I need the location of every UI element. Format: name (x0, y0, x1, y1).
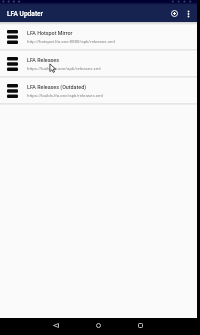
button[interactable]: Add repository (167, 5, 182, 22)
staticText: https://builds.lfa.one/apk/releases.xml (27, 93, 103, 98)
button[interactable]: LFA Releases (0, 51, 197, 76)
button[interactable]: Recent apps (130, 318, 150, 333)
button[interactable]: Home (88, 318, 108, 333)
button[interactable]: LFA Releases (Outdated) (0, 78, 197, 103)
button[interactable]: LFA Hotspot Mirror (0, 24, 197, 49)
staticText: LFA Releases (Outdated) (27, 84, 87, 90)
staticText: LFA Updater (7, 10, 43, 18)
staticText: LFA Releases (27, 57, 59, 63)
button[interactable]: More options (182, 5, 195, 22)
staticText: https://build.lfa.one/apk/releases.xml (27, 66, 101, 71)
button[interactable]: Back (46, 318, 66, 333)
staticText: http://hotspot.lfa.one:8080/apk/releases… (27, 39, 115, 44)
staticText: LFA Hotspot Mirror (27, 30, 73, 36)
